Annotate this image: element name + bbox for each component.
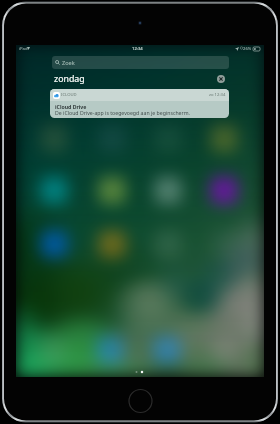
staticText: iCloud Drive	[55, 103, 87, 110]
button[interactable]: Zoek	[52, 56, 229, 69]
button[interactable]: Wis zoekopdracht	[216, 74, 226, 84]
staticText: De iCloud Drive-app is toegevoegd aan je…	[55, 109, 190, 116]
staticText: ICLOUD	[61, 92, 77, 98]
other: Wi-Fi	[27, 47, 30, 50]
staticText: Zoek	[62, 59, 75, 67]
button[interactable]: ICLOUD	[50, 89, 229, 118]
staticText: 26%	[243, 46, 252, 52]
staticText: zondag	[54, 73, 85, 85]
staticText: iPad	[19, 46, 28, 52]
staticText: 12:34	[132, 46, 143, 52]
staticText: zo 12:34	[209, 92, 226, 98]
